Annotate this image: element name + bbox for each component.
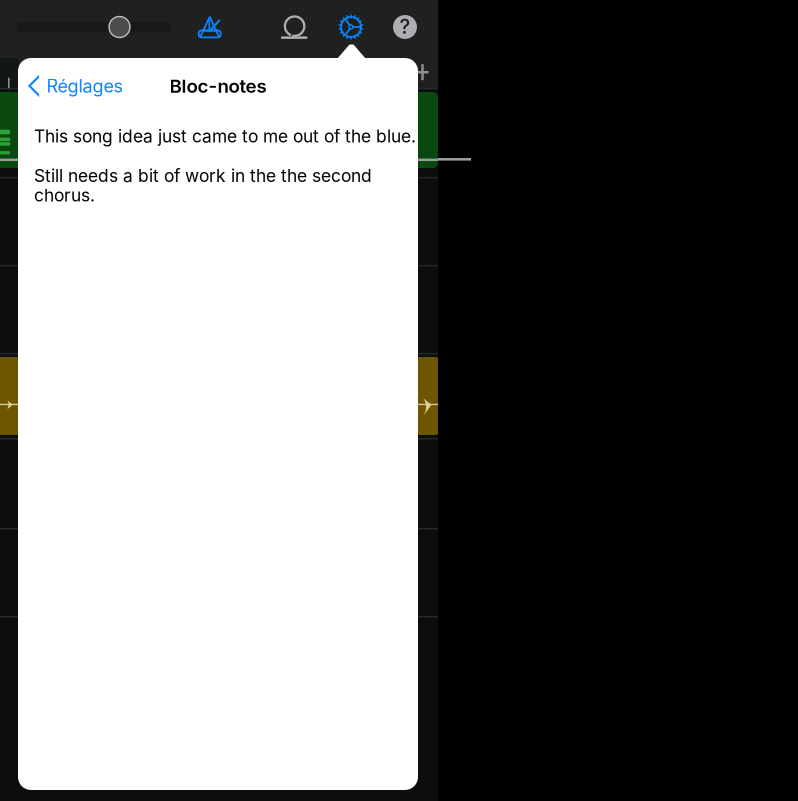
button[interactable]: Help — [383, 5, 427, 49]
button[interactable]: Réglages — [18, 64, 131, 108]
staticText: ? — [399, 14, 410, 39]
staticText: chorus. — [34, 185, 95, 206]
staticText: Réglages — [46, 75, 123, 97]
staticText: Still needs a bit of work in the the sec… — [34, 165, 372, 186]
button[interactable]: Add track — [407, 57, 437, 87]
button[interactable]: Metronome — [188, 5, 232, 49]
button[interactable]: Zoom — [16, 5, 181, 49]
button[interactable]: Settings — [329, 5, 373, 49]
staticText: This song idea just came to me out of th… — [34, 126, 416, 147]
button[interactable]: Cycle — [272, 5, 316, 49]
staticText: Bloc-notes — [169, 75, 266, 97]
